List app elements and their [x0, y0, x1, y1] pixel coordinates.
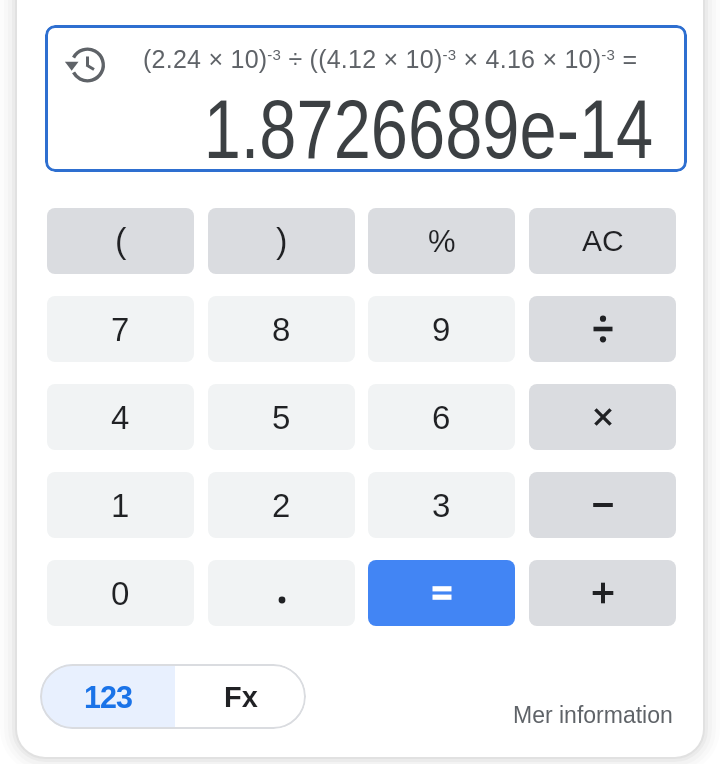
staticText: (2.24 × 10)-3 ÷ ((4.12 × 10)-3 × 4.16 × … — [143, 45, 638, 73]
staticText: 2 — [272, 487, 291, 524]
staticText: 123 — [84, 680, 132, 714]
staticText: ) — [276, 222, 288, 261]
staticText: 1.8726689e-14 — [204, 83, 654, 172]
staticText: Mer information — [513, 702, 673, 728]
staticText: Fx — [224, 681, 258, 713]
staticText: 9 — [432, 311, 451, 348]
staticText: 1 — [111, 487, 130, 524]
staticText: AC — [582, 224, 624, 258]
staticText: 5 — [272, 399, 291, 436]
staticText: 6 — [432, 399, 451, 436]
staticText: 0 — [111, 575, 130, 612]
staticText: 8 — [272, 311, 291, 348]
staticText: ( — [115, 222, 127, 261]
staticText: 7 — [111, 311, 130, 348]
staticText: 4 — [111, 399, 130, 436]
staticText: 3 — [432, 487, 451, 524]
staticText: % — [428, 224, 456, 259]
